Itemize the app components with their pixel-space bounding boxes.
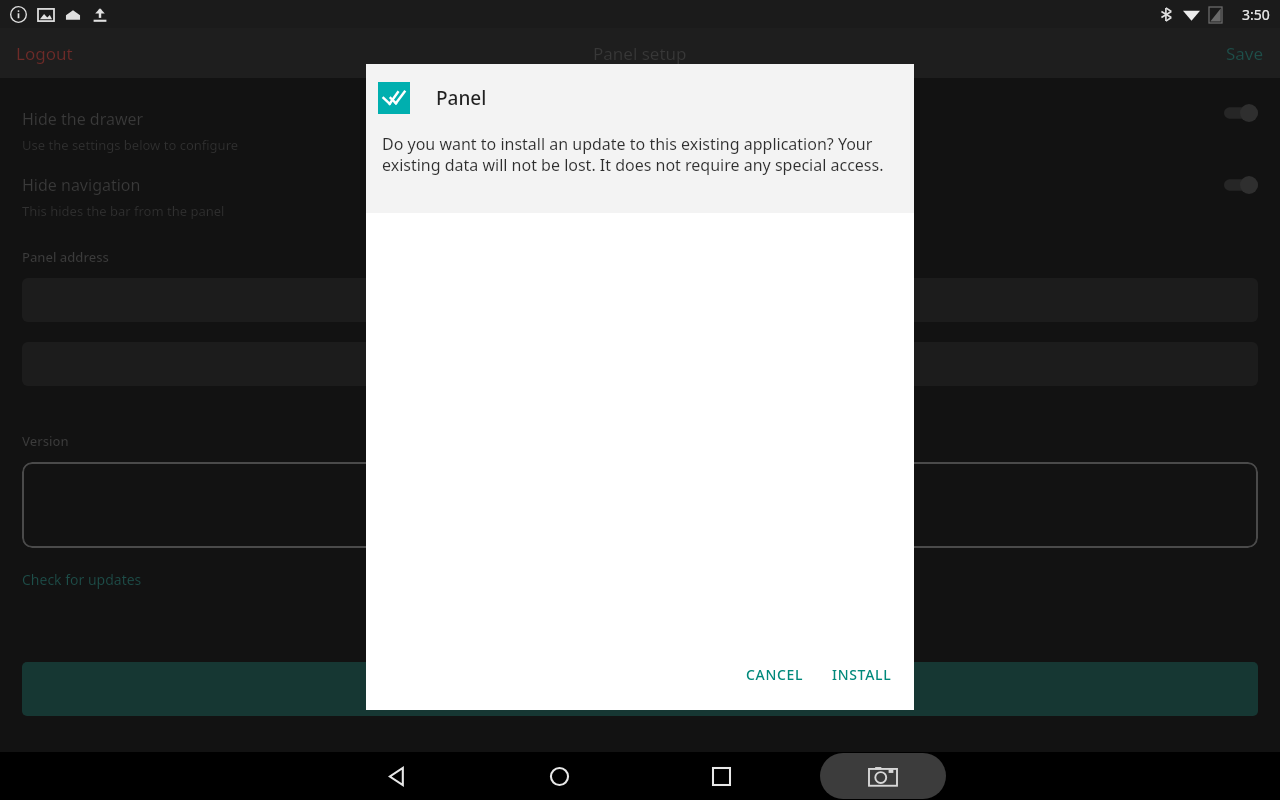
staticText: Panel: [436, 85, 487, 111]
staticText: Check for updates: [22, 570, 142, 589]
staticText: Version: [22, 432, 69, 450]
button[interactable]: Recent apps: [697, 752, 745, 800]
staticText: Save: [1226, 42, 1264, 65]
button[interactable]: Toggle: [1224, 176, 1258, 194]
staticText: Use the settings below to configure: [22, 136, 239, 154]
button[interactable]: Screenshot: [820, 753, 946, 799]
button[interactable]: Back: [373, 752, 421, 800]
button[interactable]: INSTALL: [822, 657, 902, 692]
button[interactable]: Check for updates: [22, 570, 142, 589]
button[interactable]: Toggle: [1224, 104, 1258, 122]
button[interactable]: [22, 278, 1258, 322]
staticText: 3:50: [1242, 5, 1270, 24]
staticText: Hide the drawer: [22, 108, 144, 130]
button[interactable]: Save: [22, 662, 1258, 716]
staticText: Logout: [16, 42, 73, 65]
staticText: CANCEL: [746, 665, 804, 684]
staticText: Do you want to install an update to this…: [382, 133, 898, 176]
staticText: Panel setup: [593, 42, 687, 65]
button[interactable]: Home: [535, 752, 583, 800]
button[interactable]: [22, 462, 1258, 548]
button[interactable]: CANCEL: [736, 657, 814, 692]
staticText: This hides the bar from the panel: [22, 202, 225, 220]
staticText: INSTALL: [832, 665, 892, 684]
button[interactable]: Logout: [0, 34, 89, 73]
button[interactable]: [22, 342, 1258, 386]
staticText: Panel address: [22, 248, 109, 266]
staticText: Hide navigation: [22, 174, 141, 196]
button[interactable]: Save: [1210, 34, 1280, 73]
